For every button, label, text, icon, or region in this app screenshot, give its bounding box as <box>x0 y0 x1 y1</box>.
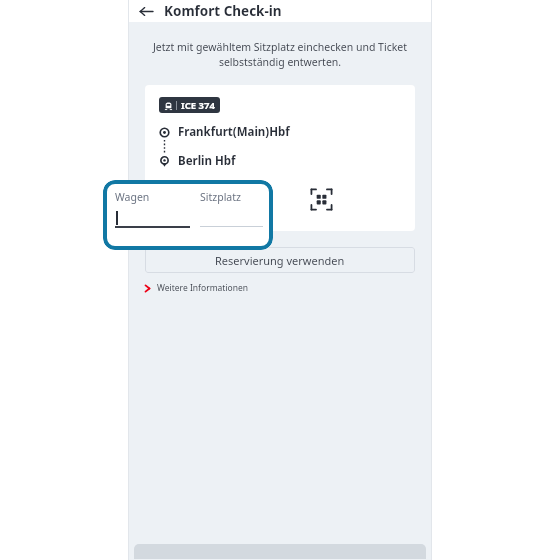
staticText: Jetzt mit gewähltem Sitzplatz einchecken… <box>145 40 415 69</box>
staticText: Wagen <box>115 190 150 204</box>
staticText: Weitere Informationen <box>157 282 249 294</box>
staticText: Frankfurt(Main)Hbf <box>178 124 290 140</box>
staticText: Reservierung verwenden <box>215 253 345 268</box>
button[interactable]: Reservierung verwenden <box>145 247 415 273</box>
button[interactable]: Weitere Informationen <box>143 280 249 296</box>
staticText: Komfort Check-in <box>164 2 282 20</box>
button[interactable]: Sitzplatz <box>200 190 263 227</box>
staticText: Berlin Hbf <box>178 153 236 169</box>
staticText: ICE 374 <box>181 99 215 112</box>
button[interactable]: Wagen <box>115 190 190 228</box>
button[interactable]: Zurück <box>134 0 158 22</box>
staticText: Sitzplatz <box>200 190 241 204</box>
button[interactable]: ICE 374 <box>145 85 415 231</box>
button[interactable]: QR-Code scannen <box>305 183 337 215</box>
